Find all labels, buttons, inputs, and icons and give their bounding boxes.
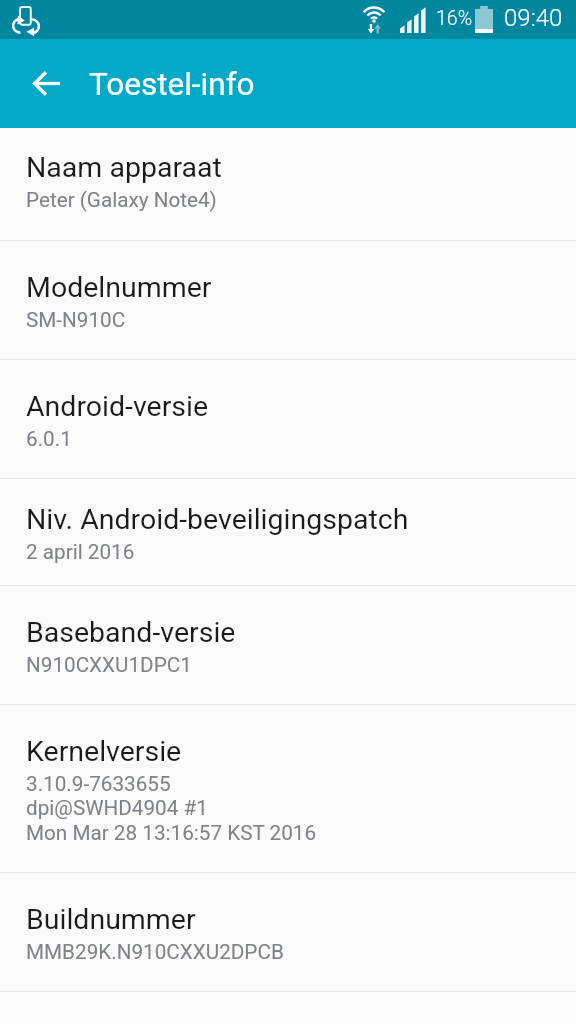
staticText: 09:40 bbox=[504, 4, 563, 32]
staticText: 3.10.9-7633655 dpi@SWHD4904 #1 Mon Mar 2… bbox=[26, 772, 317, 845]
button[interactable]: Niv. Android-beveiligingspatch bbox=[0, 479, 576, 585]
staticText: Toestel-info bbox=[89, 66, 255, 103]
staticText: Android-versie bbox=[26, 390, 209, 423]
button[interactable]: Naam apparaat bbox=[0, 128, 576, 240]
staticText: 6.0.1 bbox=[26, 427, 72, 451]
staticText: MMB29K.N910CXXU2DPCB bbox=[26, 940, 284, 964]
staticText: Niv. Android-beveiligingspatch bbox=[26, 503, 409, 536]
staticText: Baseband-versie bbox=[26, 616, 236, 649]
staticText: N910CXXU1DPC1 bbox=[26, 653, 192, 677]
button[interactable]: Modelnummer bbox=[0, 241, 576, 359]
staticText: 16% bbox=[436, 7, 473, 30]
staticText: Modelnummer bbox=[26, 271, 212, 304]
staticText: SM-N910C bbox=[26, 308, 126, 332]
button[interactable]: Baseband-versie bbox=[0, 586, 576, 704]
staticText: Peter (Galaxy Note4) bbox=[26, 188, 217, 212]
staticText: Naam apparaat bbox=[26, 151, 222, 184]
button[interactable]: Buildnummer bbox=[0, 873, 576, 991]
staticText: Buildnummer bbox=[26, 903, 196, 936]
staticText: Kernelversie bbox=[26, 735, 182, 768]
button[interactable]: Back bbox=[9, 39, 85, 128]
button[interactable]: Android-versie bbox=[0, 360, 576, 478]
button[interactable]: Kernelversie bbox=[0, 705, 576, 872]
staticText: 2 april 2016 bbox=[26, 540, 135, 564]
